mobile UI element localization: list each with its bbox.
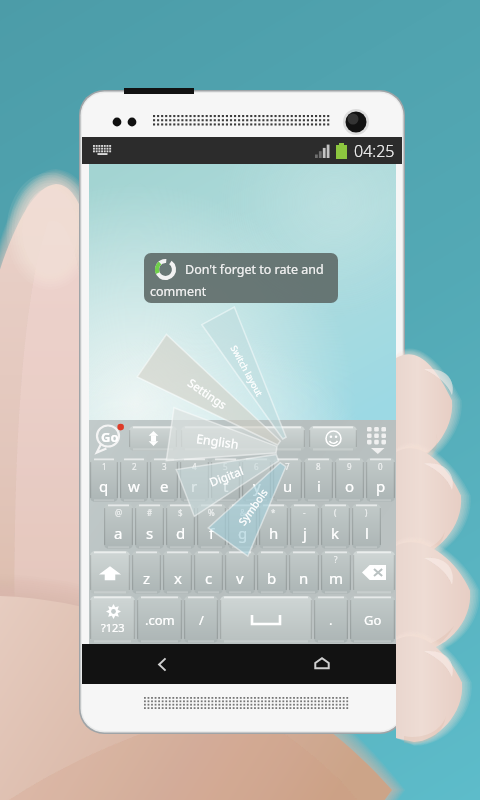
staticText: z [143, 568, 151, 588]
button[interactable]: 2 [120, 458, 148, 502]
button[interactable]: Switch layout [214, 321, 280, 419]
staticText: 0 [378, 461, 383, 472]
button[interactable]: % [197, 504, 226, 549]
staticText: . [329, 611, 333, 629]
staticText: English [195, 430, 240, 453]
button[interactable]: Don't forget to rate and [144, 253, 338, 303]
staticText: a [114, 523, 123, 543]
button[interactable]: z [132, 551, 161, 594]
button[interactable]: Symbols [90, 596, 135, 643]
staticText: t [223, 476, 229, 496]
staticText: m [329, 568, 344, 588]
button[interactable]: @ [104, 504, 133, 549]
button[interactable]: $ [166, 504, 195, 549]
button[interactable]: & [228, 504, 257, 549]
staticText: 3 [162, 461, 167, 472]
staticText: v [236, 568, 244, 588]
button[interactable]: ? [321, 551, 351, 594]
button[interactable]: Hide keyboard [362, 422, 394, 456]
staticText: Switch layout [228, 342, 266, 398]
staticText: % [208, 507, 215, 518]
staticText: i [317, 476, 321, 496]
staticText: ? [334, 554, 338, 565]
staticText: .com [145, 611, 175, 629]
staticText: y [253, 476, 261, 496]
staticText: Settings [184, 375, 230, 413]
staticText: l [365, 523, 369, 543]
button[interactable]: Shift [90, 551, 130, 594]
staticText: j [303, 523, 307, 543]
button[interactable]: # [135, 504, 164, 549]
staticText: h [269, 523, 279, 543]
button[interactable]: ) [352, 504, 381, 549]
button[interactable]: - [290, 504, 319, 549]
button[interactable]: 4 [180, 458, 209, 502]
staticText: p [376, 476, 386, 496]
button[interactable]: . [314, 596, 348, 643]
staticText: w [128, 476, 140, 496]
button[interactable]: Back [82, 644, 242, 684]
staticText: ) [365, 507, 368, 518]
staticText: $ [178, 507, 183, 518]
staticText: Don't forget to rate and [185, 261, 324, 278]
staticText: 9 [347, 461, 352, 472]
staticText: 1 [102, 461, 107, 472]
button[interactable]: c [194, 551, 223, 594]
staticText: / [199, 611, 204, 629]
staticText: s [146, 523, 154, 543]
button[interactable]: 9 [335, 458, 364, 502]
button[interactable]: / [184, 596, 218, 643]
button[interactable]: 1 [90, 458, 118, 502]
staticText: Go [364, 611, 382, 629]
button[interactable]: .com [137, 596, 182, 643]
staticText: ( [334, 507, 337, 518]
staticText: 04:25 [354, 140, 395, 162]
button[interactable]: n [289, 551, 319, 594]
button[interactable]: Settings [160, 357, 254, 430]
button[interactable]: ( [321, 504, 350, 549]
button[interactable]: 3 [150, 458, 178, 502]
staticText: Digital [207, 463, 246, 491]
button[interactable]: GO Keyboard menu [92, 423, 126, 455]
staticText: comment [150, 283, 207, 300]
button[interactable]: 0 [366, 458, 395, 502]
button[interactable]: Emoji [309, 426, 357, 451]
staticText: ?123 [101, 620, 125, 635]
staticText: b [267, 568, 277, 588]
staticText: 8 [316, 461, 321, 472]
button[interactable]: * [259, 504, 288, 549]
staticText: 5 [223, 461, 228, 472]
button[interactable]: Language [181, 426, 305, 451]
button[interactable]: Go [350, 596, 395, 643]
staticText: 7 [285, 461, 290, 472]
button[interactable]: English [166, 424, 268, 458]
button[interactable]: 5 [211, 458, 240, 502]
button[interactable]: Switch input method [129, 426, 177, 451]
staticText: Symbols [235, 486, 271, 528]
button[interactable]: Backspace [353, 551, 395, 594]
staticText: e [160, 476, 169, 496]
staticText: x [174, 568, 182, 588]
button[interactable]: 7 [273, 458, 302, 502]
staticText: 6 [254, 461, 259, 472]
staticText: 4 [192, 461, 197, 472]
staticText: c [205, 568, 213, 588]
button[interactable]: v [225, 551, 255, 594]
staticText: f [209, 523, 215, 543]
button[interactable]: Symbols [216, 460, 290, 554]
staticText: & [240, 507, 246, 518]
staticText: @ [115, 507, 123, 518]
button[interactable]: x [163, 551, 192, 594]
staticText: d [176, 523, 186, 543]
button[interactable]: Space [220, 596, 312, 643]
staticText: o [345, 476, 355, 496]
button[interactable]: 8 [304, 458, 333, 502]
button[interactable]: Digital [176, 450, 276, 504]
staticText: u [283, 476, 293, 496]
button[interactable]: b [257, 551, 287, 594]
staticText: # [147, 507, 153, 518]
staticText: 2 [132, 461, 137, 472]
button[interactable]: Home [242, 644, 402, 684]
staticText: n [299, 568, 309, 588]
button[interactable]: 6 [242, 458, 271, 502]
